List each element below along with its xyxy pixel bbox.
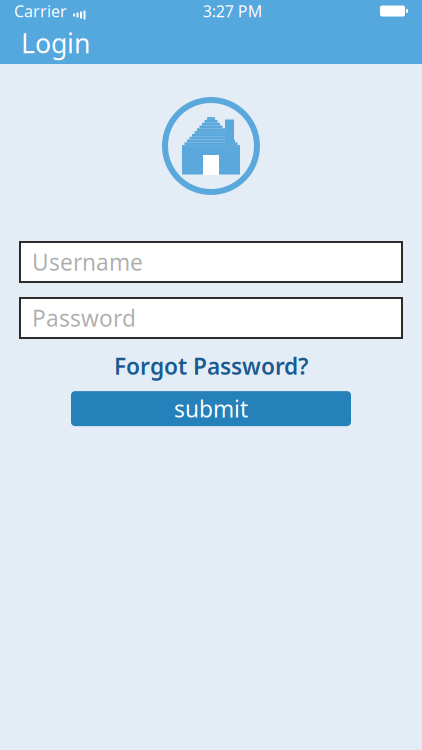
staticText: Login: [21, 25, 90, 61]
button[interactable]: submit: [71, 391, 351, 426]
staticText: 3:27 PM: [203, 0, 263, 22]
button[interactable]: Forgot Password?: [104, 346, 318, 386]
staticText: Carrier: [14, 0, 67, 22]
staticText: Forgot Password?: [114, 351, 308, 381]
staticText: Username: [32, 247, 143, 277]
staticText: submit: [174, 394, 248, 424]
staticText: Password: [32, 303, 136, 333]
